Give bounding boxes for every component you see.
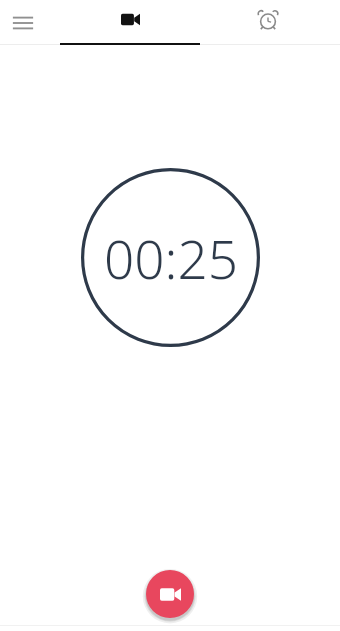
- button[interactable]: Menu: [0, 0, 46, 45]
- button[interactable]: Alarm tab: [236, 0, 300, 45]
- button[interactable]: 00:25: [81, 168, 260, 347]
- staticText: 00:25: [104, 222, 238, 294]
- button[interactable]: Video timer tab: [88, 0, 172, 45]
- button[interactable]: Start recording: [146, 570, 194, 618]
